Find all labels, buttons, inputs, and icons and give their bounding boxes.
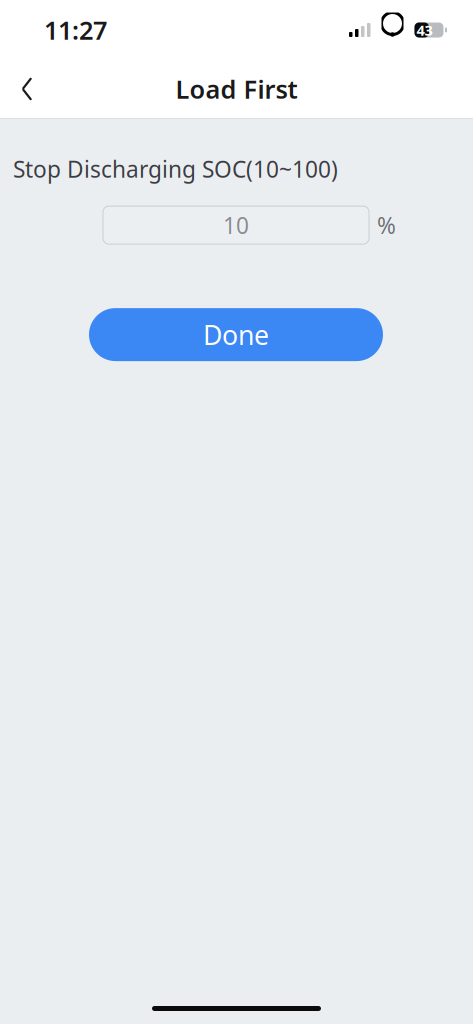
staticText: 11:27: [44, 13, 107, 47]
staticText: %: [377, 210, 396, 240]
button[interactable]: Back: [0, 65, 54, 113]
button[interactable]: 10: [103, 206, 369, 244]
button[interactable]: Done: [89, 308, 383, 361]
staticText: 43: [416, 20, 432, 40]
staticText: 10: [223, 210, 249, 240]
staticText: Stop Discharging SOC(10~100): [13, 154, 338, 184]
staticText: Done: [203, 317, 269, 352]
staticText: Load First: [175, 72, 297, 106]
